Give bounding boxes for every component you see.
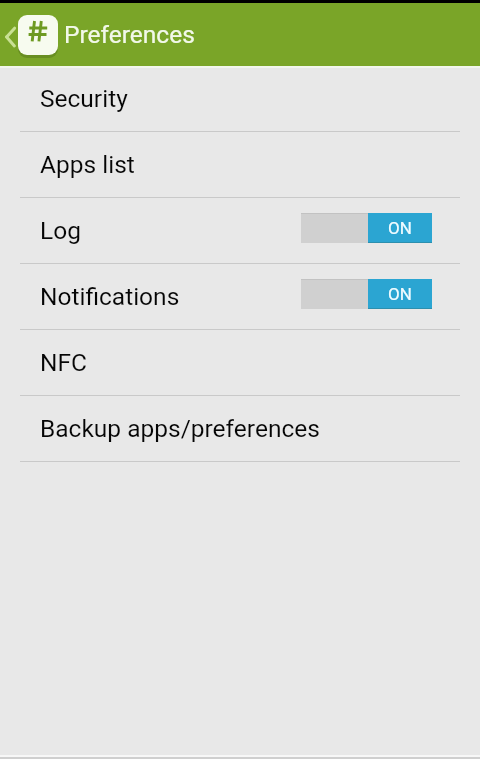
staticText: ON	[388, 218, 412, 238]
button[interactable]: Back	[0, 3, 64, 66]
button[interactable]: Backup apps/preferences	[0, 396, 480, 461]
button[interactable]: Security	[0, 66, 480, 131]
staticText: Security	[40, 84, 128, 113]
button[interactable]: Log switch, on	[301, 213, 432, 243]
staticText: NFC	[40, 348, 87, 377]
button[interactable]: Notifications	[0, 264, 480, 329]
button[interactable]: Apps list	[0, 132, 480, 197]
button[interactable]: NFC	[0, 330, 480, 395]
staticText: Apps list	[40, 150, 135, 179]
button[interactable]: Notifications switch, on	[301, 279, 432, 309]
staticText: Log	[40, 216, 81, 245]
staticText: Backup apps/preferences	[40, 414, 320, 443]
staticText: Notifications	[40, 282, 180, 311]
button[interactable]: Log	[0, 198, 480, 263]
staticText: ON	[388, 284, 412, 304]
staticText: Preferences	[64, 20, 195, 49]
